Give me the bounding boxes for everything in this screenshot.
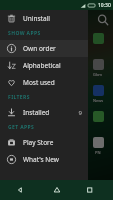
button[interactable]: Own order: [0, 40, 88, 57]
staticText: Own order: [23, 44, 56, 53]
button[interactable]: News: [89, 82, 107, 108]
button[interactable]: Uninstall: [0, 10, 88, 27]
staticText: Most used: [23, 78, 55, 87]
staticText: FILTERS: [8, 94, 30, 101]
staticText: SHOW APPS: [8, 30, 41, 37]
button[interactable]: Play Store: [0, 134, 88, 151]
staticText: Gbm: [93, 72, 103, 77]
button[interactable]: PN: [89, 134, 107, 160]
staticText: 10:30: [98, 2, 111, 9]
button[interactable]: Home: [50, 183, 64, 197]
staticText: What's New: [23, 155, 59, 164]
staticText: News: [93, 98, 104, 103]
button[interactable]: Gbm: [89, 56, 107, 82]
button[interactable]: [89, 30, 107, 56]
button[interactable]: Search: [96, 13, 110, 27]
button[interactable]: Most used: [0, 74, 88, 91]
button[interactable]: What's New: [0, 151, 88, 168]
button[interactable]: [89, 108, 107, 134]
button[interactable]: Back: [16, 183, 30, 197]
button[interactable]: Installed: [0, 104, 88, 121]
staticText: Installed: [23, 108, 50, 117]
button[interactable]: Alphabetical: [0, 57, 88, 74]
staticText: Play Store: [23, 138, 54, 147]
staticText: 9: [78, 109, 82, 117]
button[interactable]: Recents: [83, 183, 97, 197]
staticText: Uninstall: [23, 14, 50, 23]
staticText: Alphabetical: [23, 61, 61, 70]
staticText: PN: [95, 150, 101, 155]
staticText: GET APPS: [8, 124, 35, 131]
